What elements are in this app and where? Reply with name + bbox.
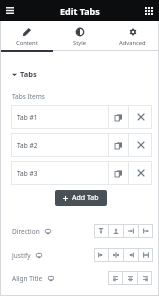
button[interactable]: Advanced [106,21,159,52]
button[interactable]: Tabs [12,69,37,79]
button[interactable]: Remove [129,161,152,185]
button[interactable]: Duplicate [109,133,128,157]
staticText: Style [73,39,86,47]
button[interactable]: Style [53,21,106,52]
button[interactable]: Menu [3,4,16,17]
button[interactable]: Justify option 4 [139,248,153,262]
staticText: Content [16,39,38,47]
button[interactable]: Tab #2 [11,133,152,157]
staticText: Edit Tabs [60,5,100,17]
button[interactable]: Remove [129,133,152,157]
button[interactable]: Duplicate [109,161,128,185]
staticText: Tab #2 [17,141,108,150]
button[interactable]: Justify option 1 [94,248,108,262]
button[interactable]: Remove [129,105,152,129]
staticText: Tabs [20,69,37,79]
button[interactable]: Direction option 4 [139,224,153,238]
staticText: Add Tab [72,193,99,203]
staticText: Tabs Items [12,92,45,101]
button[interactable]: Tab #3 [11,161,152,185]
staticText: Tab #1 [17,113,108,122]
button[interactable]: Align Title option 1 [108,271,122,285]
button[interactable]: Justify option 3 [124,248,138,262]
button[interactable]: Justify option 2 [109,248,123,262]
button[interactable]: Direction option 2 [109,224,123,238]
button[interactable]: Align Title option 2 [123,271,137,285]
button[interactable]: Direction option 3 [124,224,138,238]
button[interactable]: Add Tab [55,190,107,206]
button[interactable]: Align Title option 3 [138,271,152,285]
staticText: Advanced [119,39,146,47]
button[interactable]: Direction option 1 [94,224,108,238]
button[interactable]: Content [0,21,53,52]
staticText: Justify [12,251,31,260]
button[interactable]: Apps [142,4,155,17]
staticText: Tab #3 [17,169,108,178]
staticText: Direction [12,227,40,236]
button[interactable]: Duplicate [109,105,128,129]
staticText: Align Title [12,274,43,283]
button[interactable]: Tab #1 [11,105,152,129]
